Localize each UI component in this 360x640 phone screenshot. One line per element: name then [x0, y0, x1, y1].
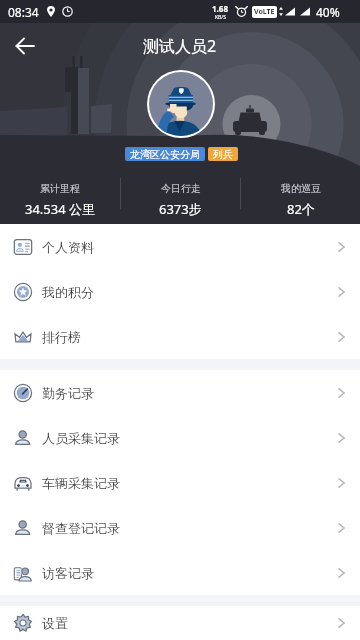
- staticText: 我的巡豆: [281, 182, 321, 195]
- staticText: 设置: [42, 615, 68, 631]
- button[interactable]: 勤务记录: [0, 370, 360, 415]
- button[interactable]: 督查登记记录: [0, 505, 360, 550]
- button[interactable]: 人员采集记录: [0, 415, 360, 460]
- staticText: 34.534 公里: [25, 200, 96, 218]
- button[interactable]: 排行榜: [0, 314, 360, 359]
- staticText: 08:34: [8, 4, 39, 20]
- button[interactable]: 我的积分: [0, 269, 360, 314]
- button[interactable]: 访客记录: [0, 550, 360, 595]
- staticText: 累计里程: [40, 182, 80, 195]
- staticText: 访客记录: [42, 565, 94, 581]
- button[interactable]: 我的巡豆: [241, 178, 360, 218]
- staticText: 勤务记录: [42, 385, 94, 401]
- staticText: 82个: [287, 200, 315, 218]
- staticText: 今日行走: [161, 182, 201, 195]
- staticText: 人员采集记录: [42, 430, 120, 446]
- button[interactable]: Back: [5, 26, 45, 66]
- button[interactable]: Avatar: [147, 70, 215, 138]
- staticText: 列兵: [213, 148, 233, 161]
- button[interactable]: 今日行走: [121, 178, 240, 218]
- button[interactable]: 累计里程: [0, 178, 120, 218]
- button[interactable]: 设置: [0, 606, 360, 640]
- staticText: VoLTE: [254, 7, 275, 17]
- staticText: 1.68: [212, 3, 228, 14]
- staticText: 排行榜: [42, 329, 81, 345]
- staticText: 测试人员2: [143, 35, 217, 57]
- staticText: 6373步: [159, 200, 202, 218]
- button[interactable]: 车辆采集记录: [0, 460, 360, 505]
- staticText: 督查登记记录: [42, 520, 120, 536]
- staticText: KB/S: [215, 14, 226, 21]
- button[interactable]: 个人资料: [0, 224, 360, 269]
- staticText: 龙湾区公安分局: [130, 148, 200, 161]
- staticText: 个人资料: [42, 239, 94, 255]
- staticText: 我的积分: [42, 284, 94, 300]
- staticText: 40%: [316, 4, 340, 20]
- staticText: 车辆采集记录: [42, 475, 120, 491]
